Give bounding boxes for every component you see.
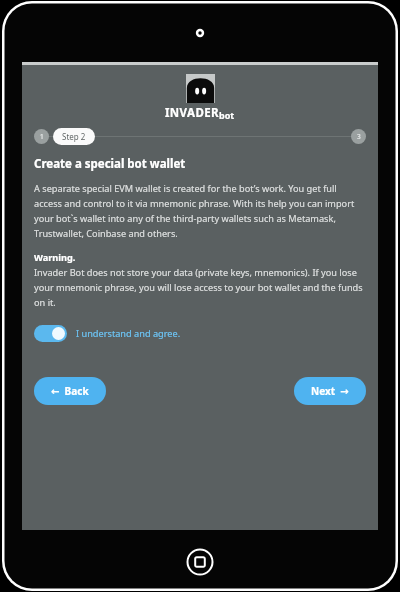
- staticText: Invader Bot does not store your data (pr…: [34, 266, 366, 308]
- staticText: A separate special EVM wallet is created…: [34, 182, 366, 239]
- button[interactable]: Home: [184, 546, 216, 578]
- staticText: Create a special bot wallet: [34, 156, 186, 172]
- staticText: Step 2: [62, 131, 86, 142]
- button[interactable]: ← Back: [34, 377, 106, 405]
- button[interactable]: Step 2: [53, 128, 95, 145]
- staticText: INVADER: [165, 105, 219, 121]
- staticText: Next →: [311, 384, 349, 398]
- button[interactable]: Next →: [294, 377, 366, 405]
- staticText: Warning.: [34, 251, 76, 264]
- staticText: I understand and agree.: [76, 327, 181, 340]
- button[interactable]: 3: [351, 129, 366, 144]
- staticText: 1: [40, 132, 44, 141]
- button[interactable]: 1: [34, 129, 49, 144]
- staticText: bot: [219, 109, 235, 121]
- button[interactable]: I understand and agree.: [34, 323, 181, 344]
- staticText: ← Back: [51, 384, 89, 398]
- staticText: 3: [357, 132, 361, 141]
